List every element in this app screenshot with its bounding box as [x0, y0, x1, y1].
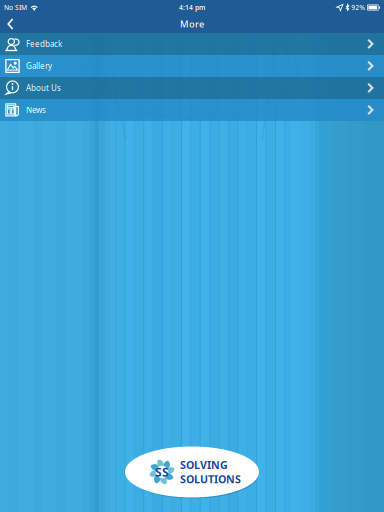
staticText: News: [26, 105, 46, 115]
staticText: No SIM: [4, 3, 27, 12]
button[interactable]: Back: [0, 15, 26, 33]
staticText: SS: [155, 464, 169, 480]
staticText: About Us: [26, 83, 61, 93]
staticText: More: [180, 18, 204, 30]
staticText: 4:14 pm: [179, 3, 205, 12]
staticText: Gallery: [26, 61, 52, 71]
button[interactable]: About Us: [0, 77, 384, 99]
button[interactable]: News: [0, 99, 384, 121]
staticText: SOLUTIONS: [180, 472, 241, 486]
button[interactable]: Gallery: [0, 55, 384, 77]
button[interactable]: Feedback: [0, 33, 384, 55]
staticText: 92%: [351, 3, 365, 12]
staticText: Feedback: [26, 39, 62, 49]
staticText: SOLVING: [180, 458, 228, 472]
